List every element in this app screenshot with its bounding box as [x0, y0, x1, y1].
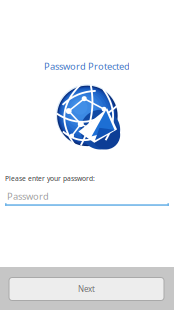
staticText: Password Protected: [44, 60, 130, 72]
staticText: Please enter your password:: [5, 174, 95, 183]
staticText: Password: [7, 190, 49, 202]
staticText: Next: [78, 284, 95, 294]
button[interactable]: Next: [9, 277, 164, 300]
